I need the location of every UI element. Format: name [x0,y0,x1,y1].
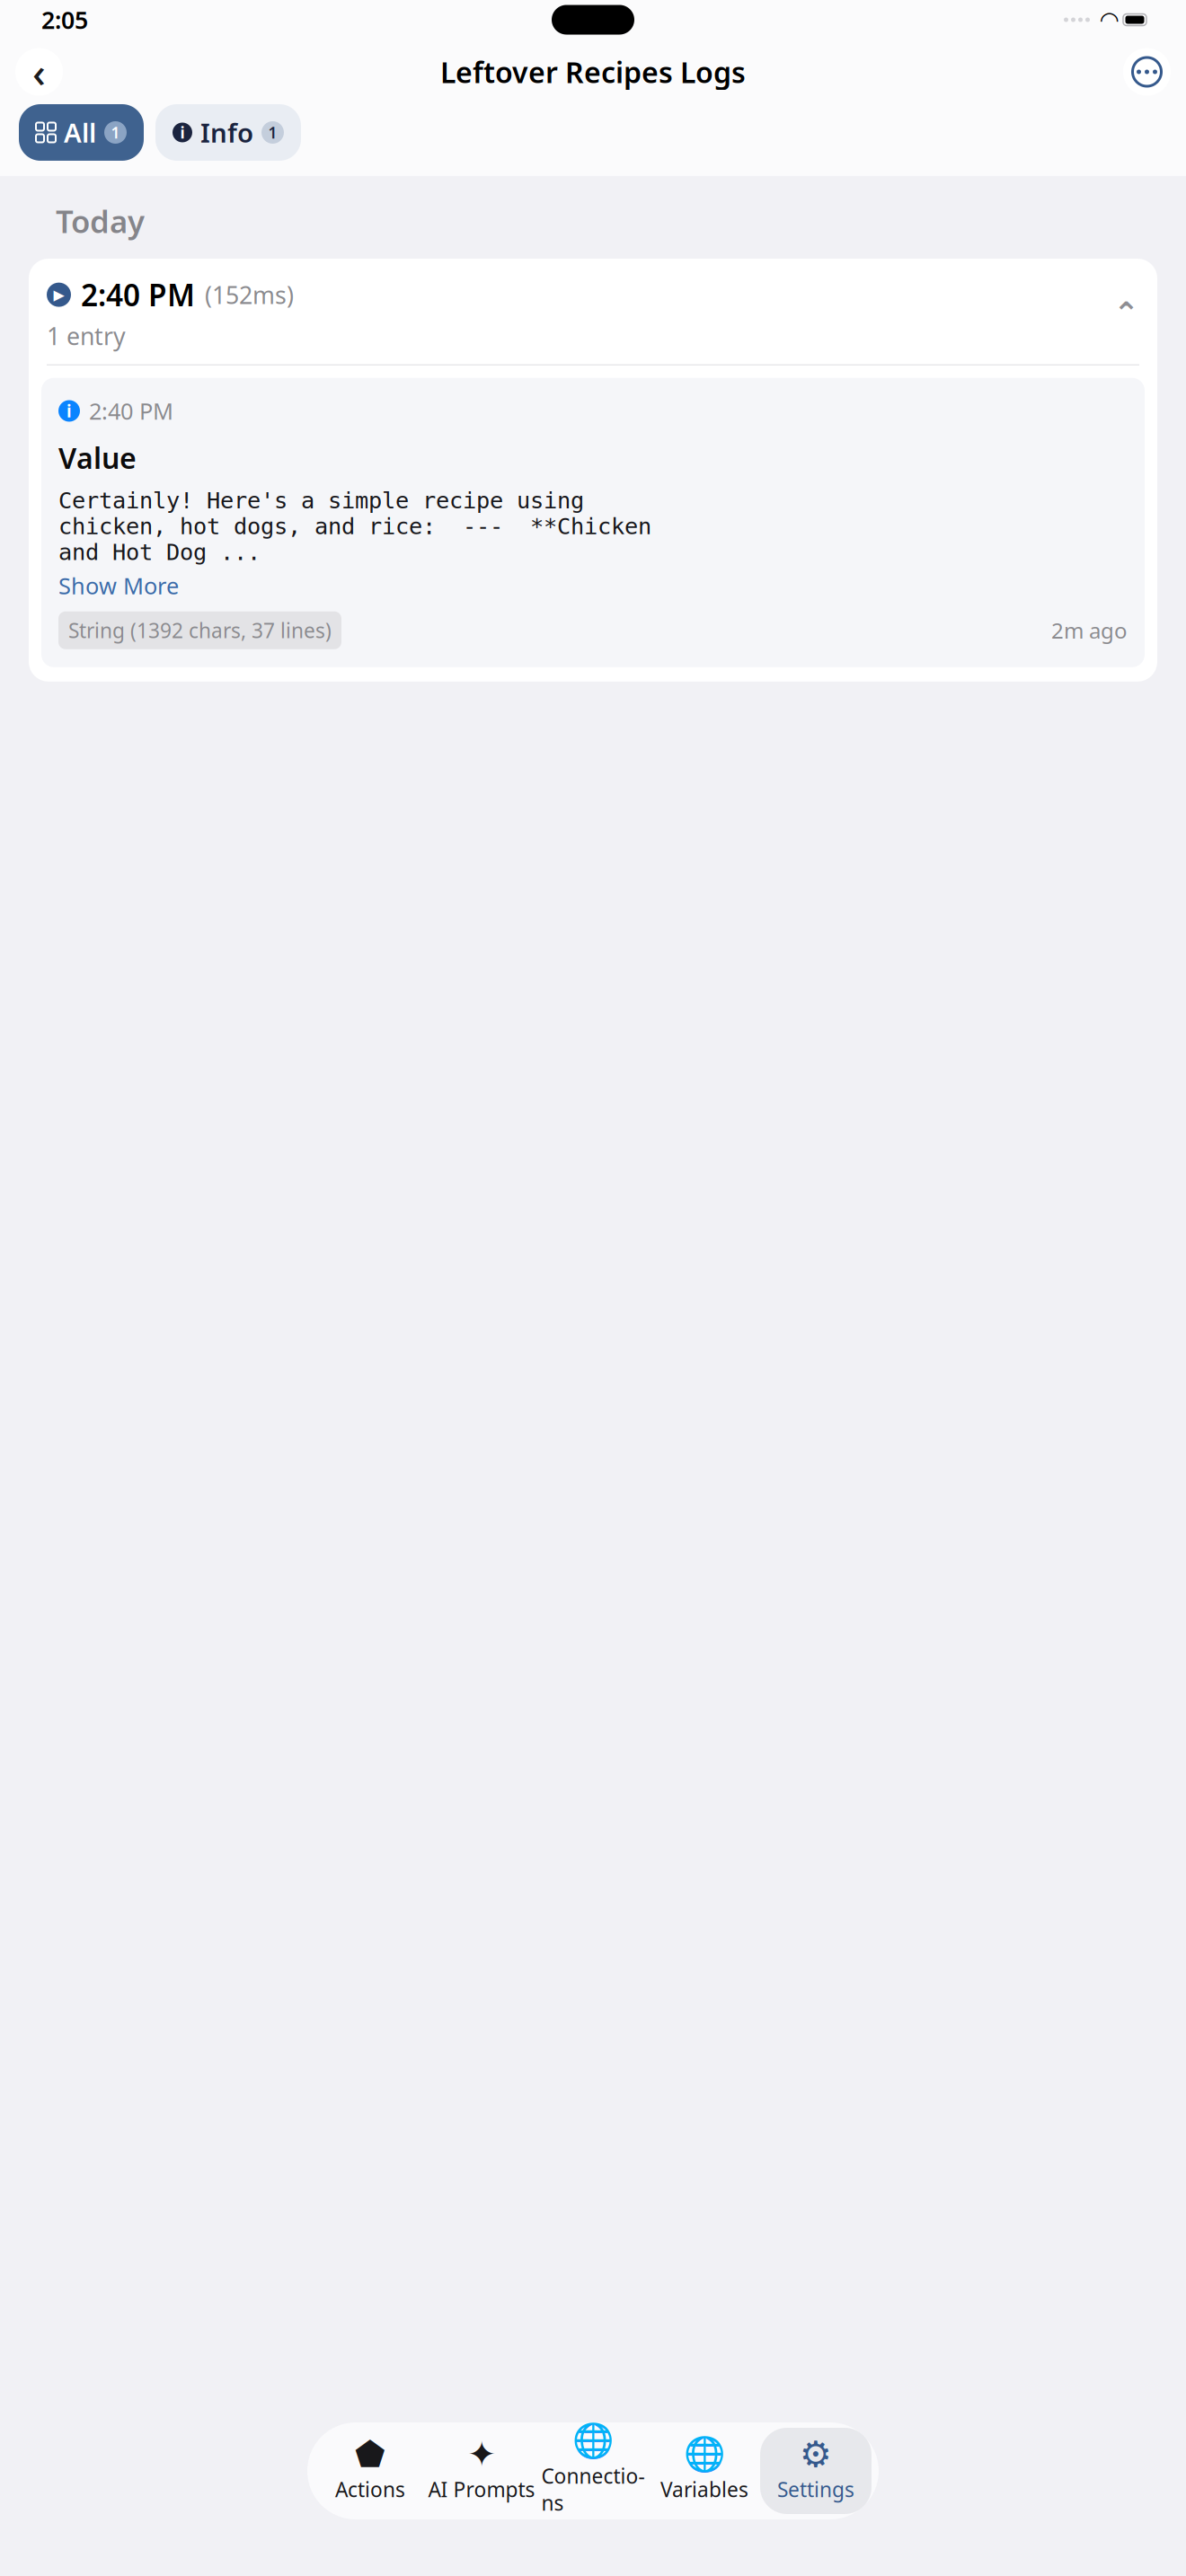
staticText: 1 entry [47,320,126,352]
button[interactable]: i [155,104,301,161]
staticText: Connections [541,2462,645,2516]
staticText: Show More [58,570,179,601]
button[interactable]: ⚙ [760,2428,872,2514]
staticText: All [64,115,96,150]
staticText: Variables [660,2476,748,2503]
staticText: Info [200,115,253,150]
staticText: 2:05 [41,4,88,36]
staticText: 🌐 [684,2435,725,2473]
staticText: and Hot Dog ... [58,539,261,565]
button[interactable]: 🌐 [649,2428,760,2514]
staticText: ✦ [467,2435,496,2474]
staticText: Leftover Recipes Logs [440,53,746,91]
staticText: ⚙ [800,2434,832,2475]
staticText: Value [58,439,137,477]
button[interactable]: ⬟ [314,2428,426,2514]
staticText: 1 [268,122,277,143]
staticText: Certainly! Here's a simple recipe using [58,488,584,513]
staticText: Settings [777,2476,854,2503]
button[interactable]: ✦ [426,2428,537,2514]
staticText: i [66,400,72,422]
staticText: 2:40 PM [81,275,195,315]
staticText: String (1392 chars, 37 lines) [68,617,332,644]
button[interactable]: Show More [58,570,179,601]
staticText: ◠ [1101,7,1118,33]
staticText: AI Prompts [428,2476,535,2503]
staticText: ⬟ [355,2435,385,2474]
staticText: (152ms) [205,279,294,311]
staticText: chicken, hot dogs, and rice: --- **Chick… [58,513,651,539]
button[interactable]: ▶ [29,259,1157,364]
button[interactable]: Back [15,48,63,96]
button[interactable]: All [19,104,144,161]
staticText: 2:40 PM [89,396,173,426]
staticText: 1 [111,122,120,143]
staticText: Today [56,200,145,242]
button[interactable]: 🌐 [537,2428,649,2514]
staticText: i [180,122,185,143]
staticText: ‹ [32,45,46,99]
staticText: ⌃ [1113,296,1139,331]
button[interactable]: More options [1123,48,1171,96]
staticText: 🌐 [572,2422,614,2460]
staticText: Actions [335,2476,405,2503]
staticText: ▶ [53,287,64,303]
staticText: 2m ago [1051,616,1128,645]
